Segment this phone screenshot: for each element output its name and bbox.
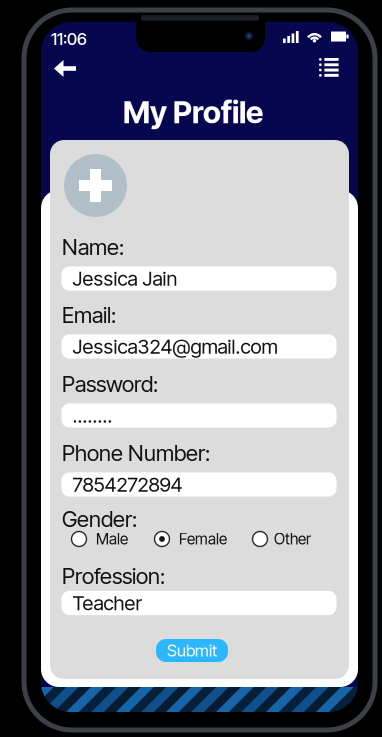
- staticText: Jessica324@gmail.com: [72, 334, 277, 359]
- staticText: Email:: [62, 302, 116, 328]
- button[interactable]: Back: [54, 60, 76, 77]
- staticText: 11:06: [51, 29, 87, 49]
- staticText: Password:: [62, 371, 158, 397]
- staticText: Profession:: [62, 563, 165, 589]
- staticText: Name:: [62, 234, 124, 260]
- staticText: Submit: [167, 640, 217, 661]
- button[interactable]: Male: [71, 531, 86, 546]
- staticText: Female: [179, 530, 227, 548]
- staticText: Gender:: [62, 506, 137, 532]
- staticText: ........: [72, 403, 112, 428]
- button[interactable]: Female: [154, 531, 169, 546]
- staticText: Phone Number:: [62, 440, 210, 466]
- button[interactable]: Menu: [319, 58, 339, 78]
- button[interactable]: Other: [252, 531, 267, 546]
- button[interactable]: Submit: [156, 639, 228, 662]
- button[interactable]: Add profile photo: [64, 154, 127, 217]
- staticText: Teacher: [72, 591, 142, 615]
- staticText: Jessica Jain: [72, 266, 177, 291]
- staticText: 7854272894: [72, 472, 182, 497]
- staticText: Other: [274, 530, 311, 548]
- staticText: Male: [96, 530, 128, 548]
- staticText: My Profile: [123, 93, 263, 130]
